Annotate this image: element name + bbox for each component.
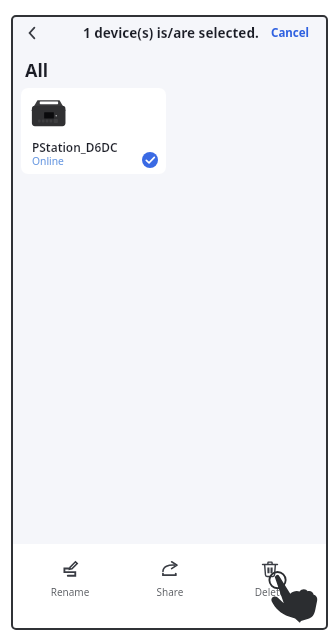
staticText: Online bbox=[32, 154, 64, 168]
staticText: Rename bbox=[28, 585, 112, 599]
button[interactable]: Rename bbox=[28, 561, 112, 599]
button[interactable]: Delete bbox=[228, 561, 312, 599]
staticText: All bbox=[25, 58, 49, 83]
button[interactable]: Cancel bbox=[271, 25, 309, 41]
staticText: Delete bbox=[228, 585, 312, 599]
button[interactable]: Share bbox=[128, 561, 212, 599]
staticText: Share bbox=[128, 585, 212, 599]
staticText: 1 device(s) is/are selected. bbox=[83, 24, 259, 42]
staticText: Cancel bbox=[271, 25, 309, 41]
staticText: PStation_D6DC bbox=[32, 139, 118, 155]
button[interactable]: PStation_D6DC bbox=[21, 88, 166, 174]
button[interactable]: Back bbox=[16, 17, 48, 49]
